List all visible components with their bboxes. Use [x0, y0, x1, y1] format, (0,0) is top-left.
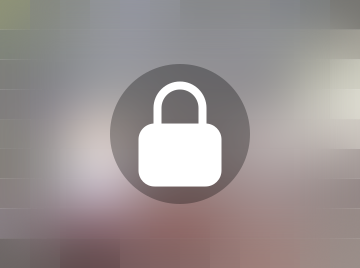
button[interactable]: Locked	[110, 64, 250, 204]
